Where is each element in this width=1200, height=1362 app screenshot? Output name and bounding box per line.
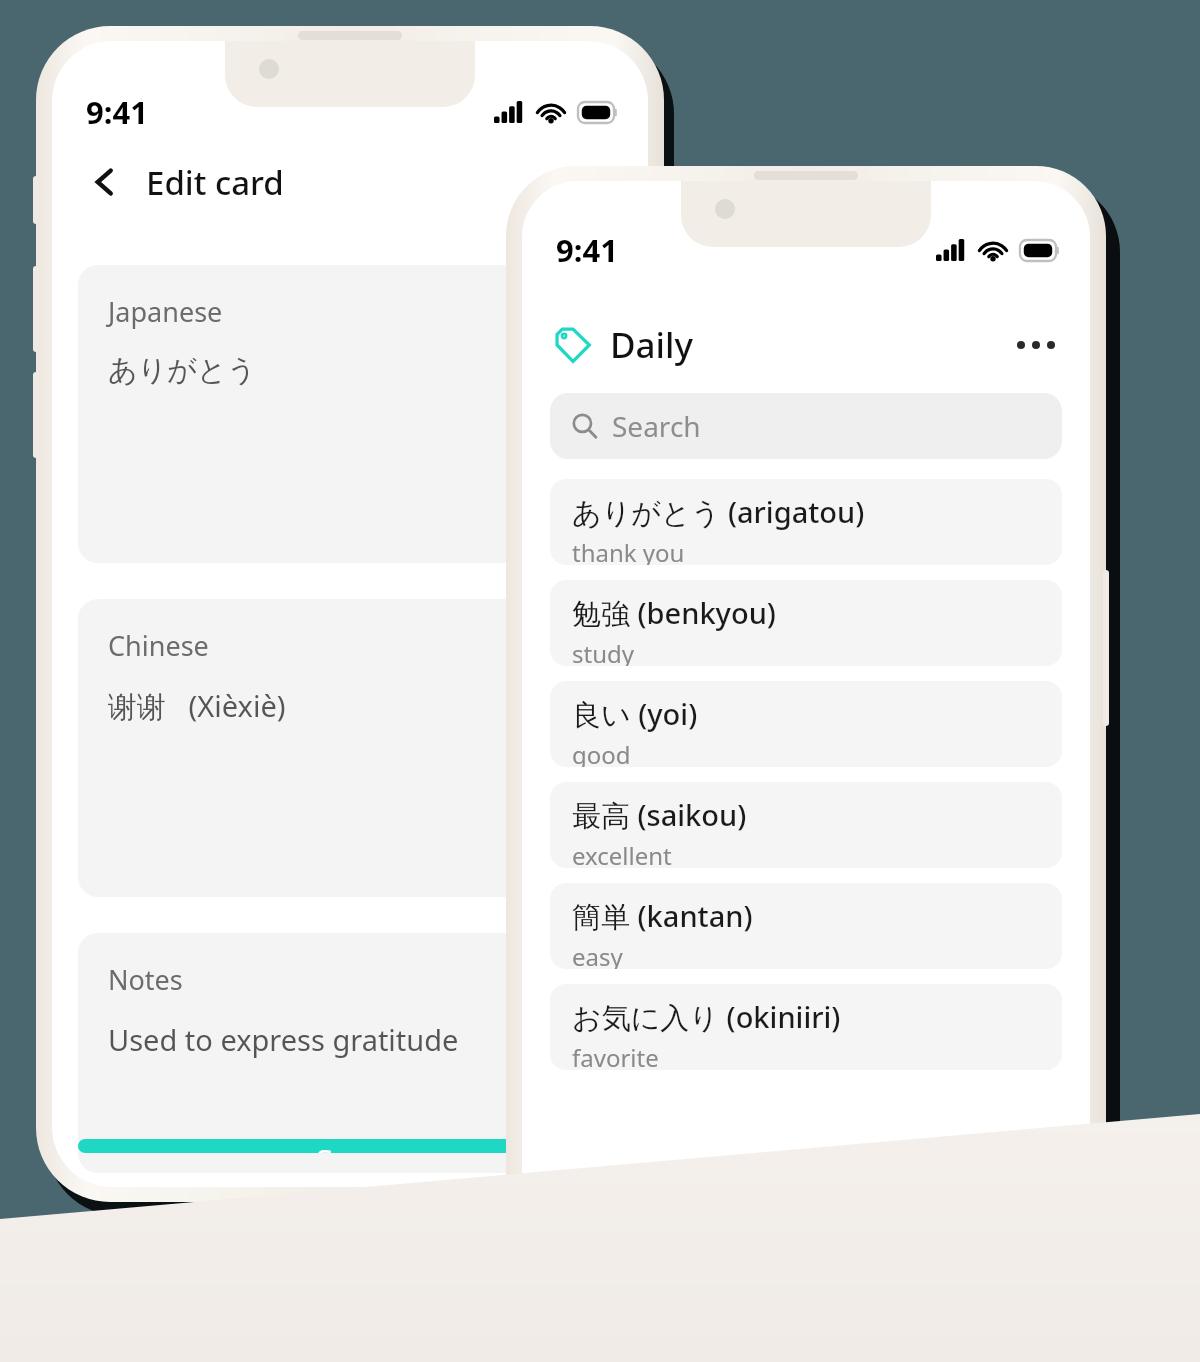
button[interactable]: Save (78, 1139, 622, 1153)
staticText: 最高 (saikou) (572, 795, 747, 835)
staticText: 勉強 (benkyou) (572, 593, 776, 633)
staticText: excellent (572, 839, 672, 868)
button[interactable]: ありがとう (arigatou) (550, 479, 1062, 565)
staticText: 9:41 (86, 91, 148, 133)
button[interactable]: Japanese (78, 265, 622, 563)
staticText: Daily (610, 321, 693, 369)
staticText: Save (316, 1139, 384, 1153)
staticText: お気に入り (okiniiri) (572, 997, 841, 1037)
button[interactable]: お気に入り (okiniiri) (550, 984, 1062, 1070)
staticText: ありがとう (108, 352, 257, 389)
staticText: easy (572, 940, 623, 969)
staticText: ありがとう (arigatou) (572, 492, 865, 532)
button[interactable]: 簡単 (kantan) (550, 883, 1062, 969)
staticText: Chinese (108, 627, 209, 664)
staticText: 9:41 (556, 229, 618, 271)
staticText: study (572, 637, 634, 666)
button[interactable]: More options (1010, 319, 1062, 371)
staticText: thank you (572, 536, 685, 565)
button[interactable]: Chinese (78, 599, 622, 897)
staticText: 簡単 (kantan) (572, 896, 753, 936)
staticText: Used to express gratitude (108, 1020, 459, 1059)
button[interactable]: 最高 (saikou) (550, 782, 1062, 868)
button[interactable]: Tag (550, 322, 596, 368)
staticText: good (572, 738, 631, 767)
staticText: Edit card (146, 160, 284, 205)
staticText: favorite (572, 1041, 659, 1070)
staticText: 良い (yoi) (572, 694, 698, 734)
button[interactable]: 勉強 (benkyou) (550, 580, 1062, 666)
staticText: Japanese (108, 293, 223, 330)
staticText: 谢谢 (Xièxiè) (108, 686, 286, 726)
button[interactable]: Search (550, 393, 1062, 459)
button[interactable]: 良い (yoi) (550, 681, 1062, 767)
button[interactable]: Notes (78, 933, 622, 1173)
button[interactable]: Back (78, 155, 132, 209)
staticText: Search (612, 407, 701, 445)
staticText: Notes (108, 961, 183, 998)
